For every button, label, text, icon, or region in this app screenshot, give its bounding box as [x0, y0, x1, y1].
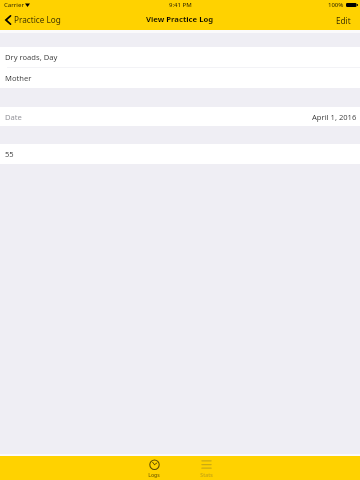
staticText: Edit — [336, 15, 351, 26]
button[interactable]: Stats — [180, 456, 232, 480]
staticText: View Practice Log — [146, 14, 214, 24]
button[interactable]: Edit — [328, 12, 360, 29]
other: Logs — [149, 459, 160, 470]
staticText: 55 — [5, 149, 14, 159]
staticText: 9:41 PM — [169, 1, 192, 9]
staticText: Logs — [148, 471, 160, 478]
button[interactable]: Back — [0, 13, 67, 28]
staticText: Practice Log — [14, 14, 61, 25]
button[interactable]: 55 — [0, 144, 360, 164]
button[interactable]: Logs — [128, 456, 180, 480]
other: Back — [5, 15, 11, 25]
button[interactable]: Mother — [0, 68, 360, 88]
staticText: Mother — [5, 73, 32, 83]
other: Stats — [201, 459, 212, 470]
staticText: Carrier — [4, 1, 24, 9]
staticText: Date — [5, 112, 22, 122]
button[interactable]: Dry roads, Day — [0, 47, 360, 67]
staticText: April 1, 2016 — [312, 112, 357, 122]
staticText: Dry roads, Day — [5, 52, 58, 62]
staticText: Stats — [200, 471, 213, 478]
button[interactable]: Date — [0, 107, 360, 126]
staticText: 100% — [328, 1, 344, 9]
